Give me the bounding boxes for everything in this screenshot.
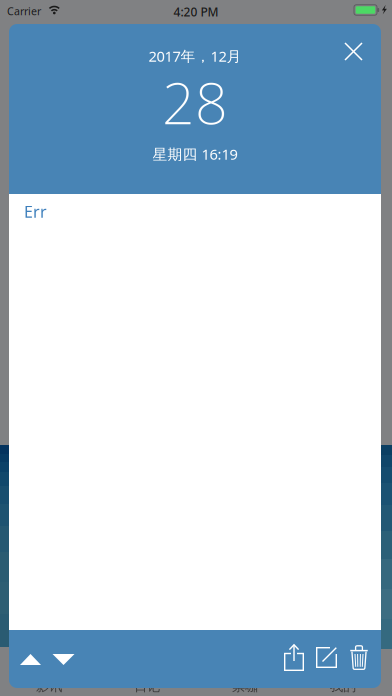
button[interactable]: 票咖 (196, 650, 294, 696)
staticText: 星期四 16:19 (152, 144, 237, 164)
staticText: 票咖 (232, 678, 258, 694)
button[interactable]: 我的 (294, 650, 392, 696)
button[interactable]: Delete (337, 635, 381, 679)
staticText: 影讯 (36, 678, 62, 694)
staticText: 28 (162, 64, 228, 140)
staticText: Err (24, 201, 47, 222)
button[interactable]: Next entry (41, 637, 85, 681)
button[interactable]: Share (272, 635, 316, 679)
staticText: 日记 (134, 678, 160, 694)
staticText: Carrier (7, 4, 41, 18)
button[interactable]: Previous entry (8, 637, 52, 681)
button[interactable]: 影讯 (0, 650, 98, 696)
button[interactable]: Edit (304, 635, 348, 679)
staticText: 2017年，12月 (148, 46, 241, 66)
staticText: 我的 (330, 678, 356, 694)
button[interactable]: 日记 (98, 650, 196, 696)
staticText: 4:20 PM (173, 4, 218, 20)
button[interactable]: Close (331, 29, 375, 73)
